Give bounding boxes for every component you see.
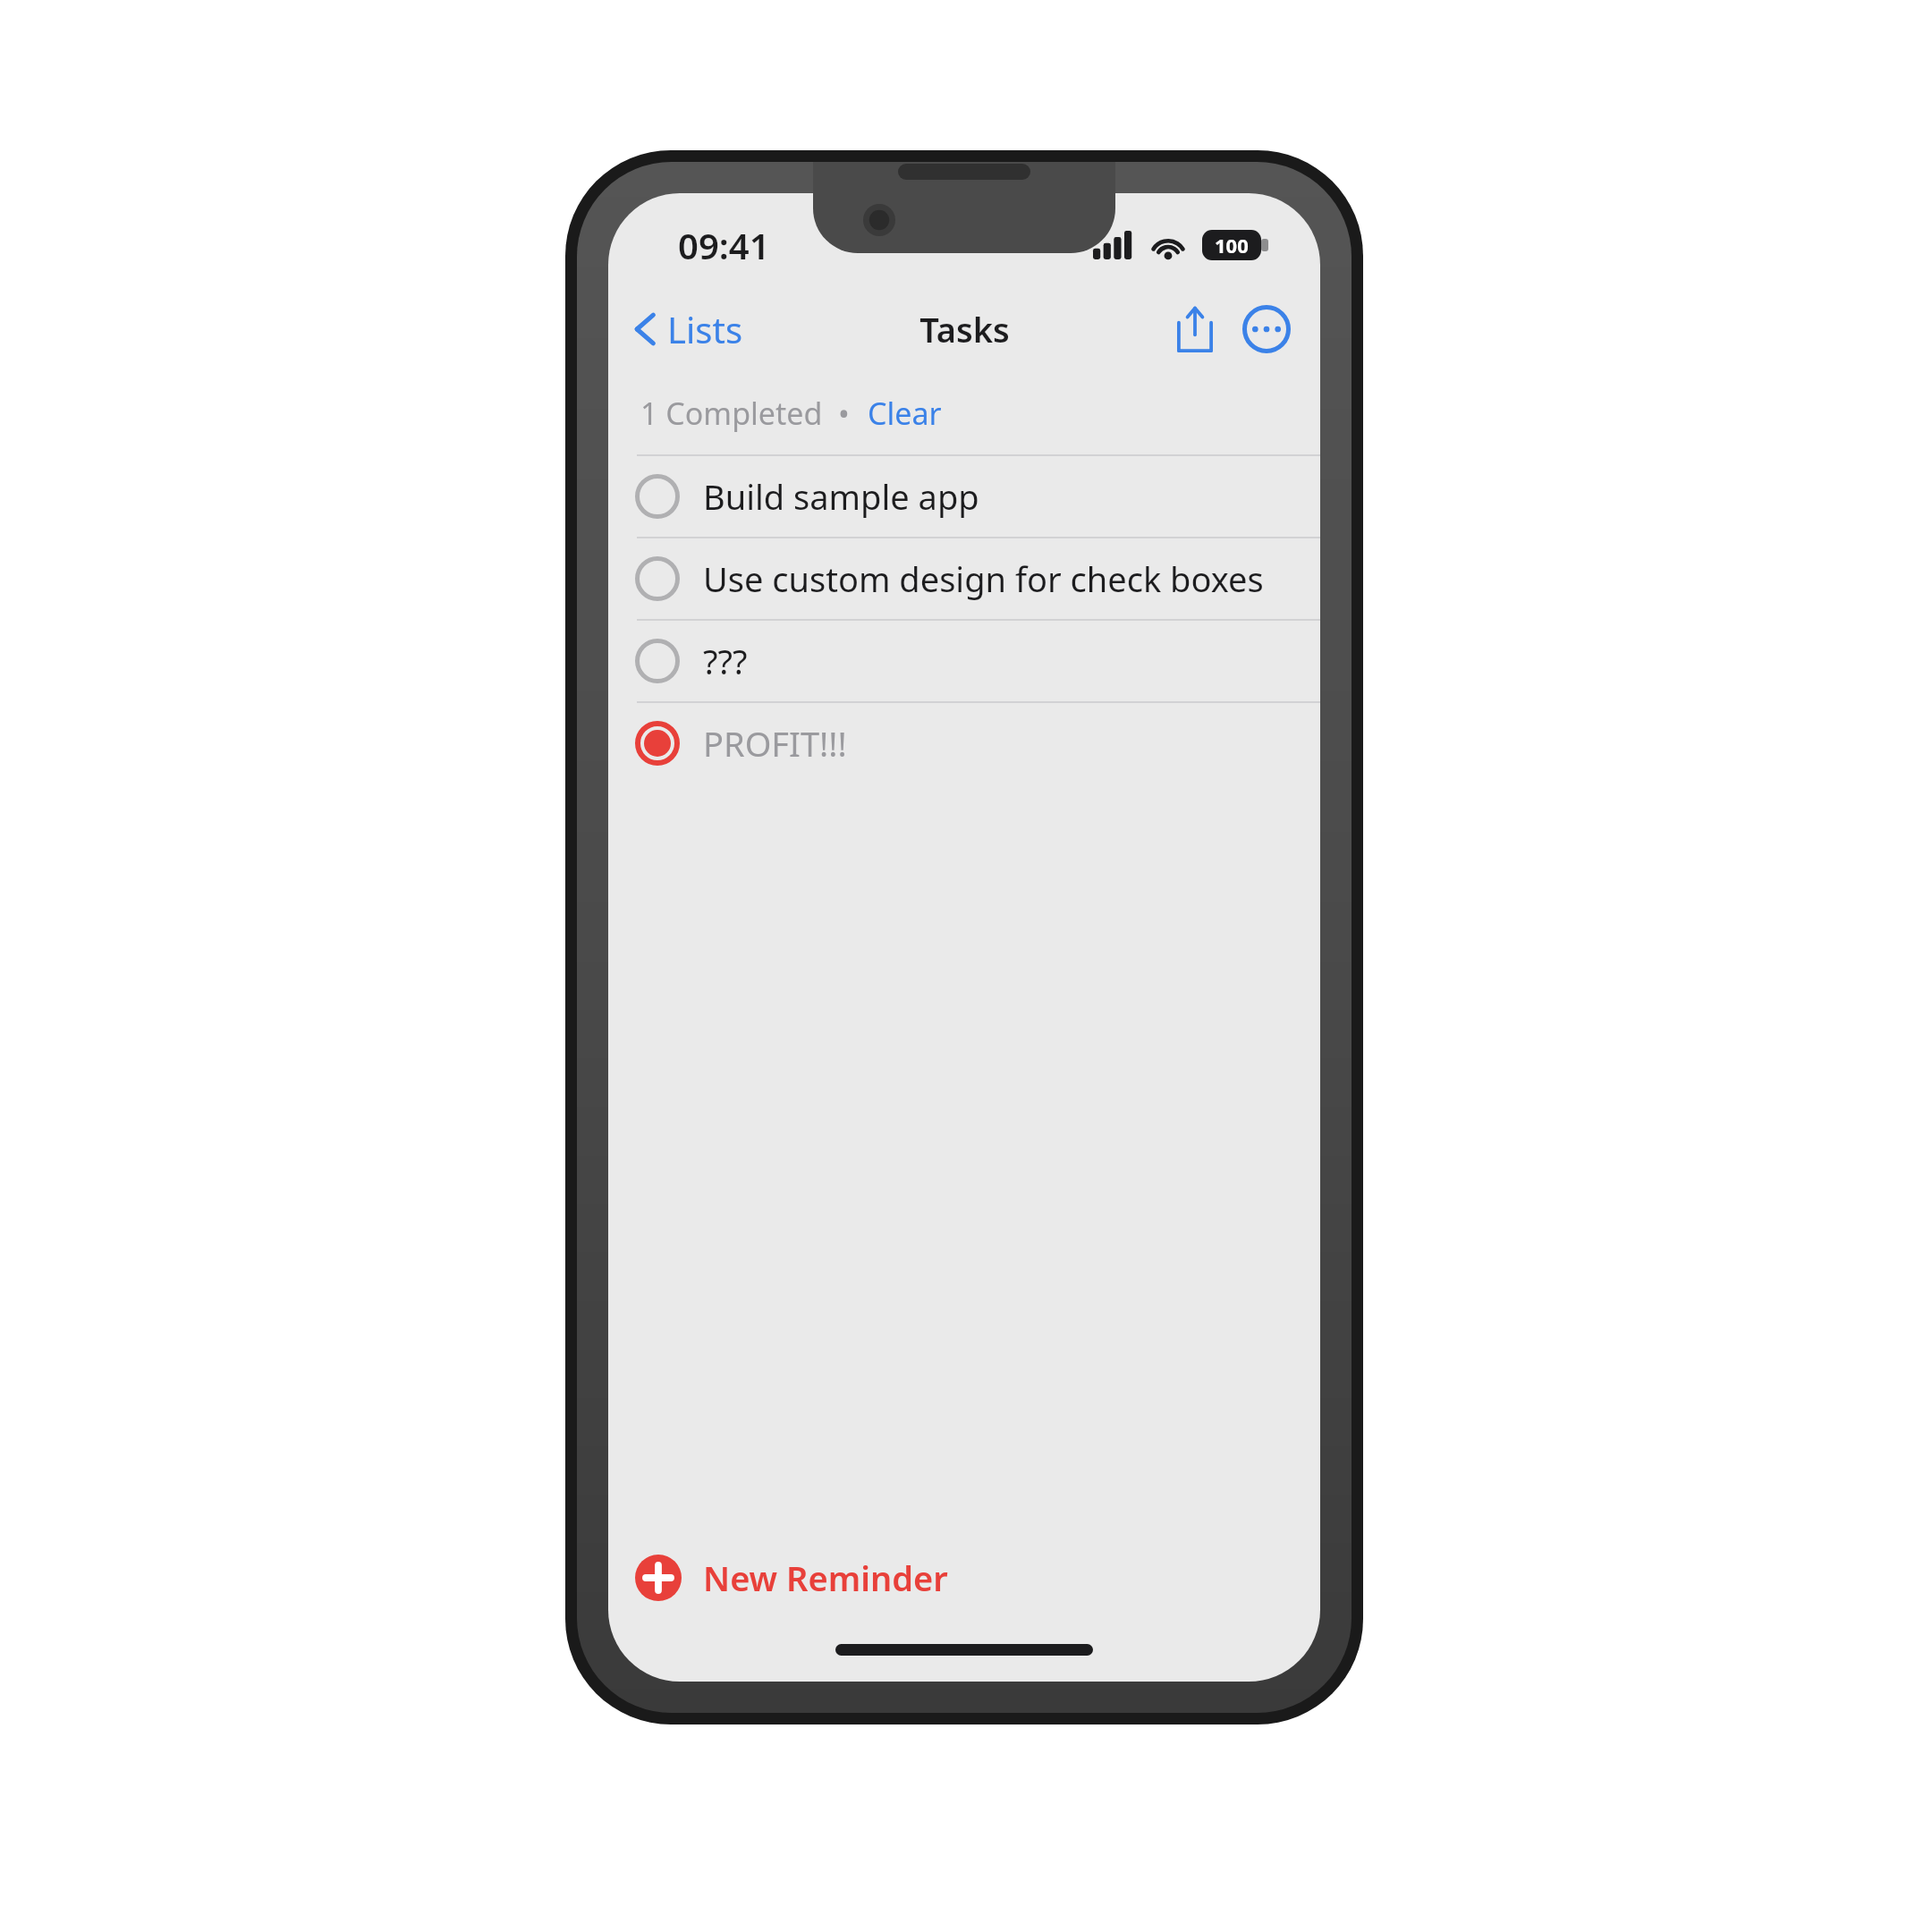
staticText: 1 Completed • xyxy=(640,393,866,434)
staticText: PROFIT!!! xyxy=(703,720,847,767)
button[interactable]: PROFIT!!! xyxy=(608,701,1320,784)
button[interactable]: Clear xyxy=(866,387,944,439)
button[interactable]: Lists xyxy=(608,298,758,360)
staticText: Lists xyxy=(667,305,743,353)
staticText: New Reminder xyxy=(703,1555,948,1601)
staticText: Clear xyxy=(868,393,942,434)
button[interactable]: ??? xyxy=(608,619,1320,701)
staticText: 100 xyxy=(1215,232,1249,258)
button[interactable]: Use custom design for check boxes xyxy=(608,537,1320,619)
staticText: 09:41 xyxy=(678,221,770,269)
staticText: Build sample app xyxy=(703,473,979,520)
button[interactable]: More options xyxy=(1234,297,1299,361)
staticText: Use custom design for check boxes xyxy=(703,555,1264,602)
button[interactable]: New Reminder xyxy=(608,1538,1320,1628)
staticText: ??? xyxy=(703,638,748,684)
button[interactable]: Build sample app xyxy=(608,454,1320,537)
staticText: Tasks xyxy=(919,306,1010,352)
button[interactable]: Share xyxy=(1163,297,1227,361)
